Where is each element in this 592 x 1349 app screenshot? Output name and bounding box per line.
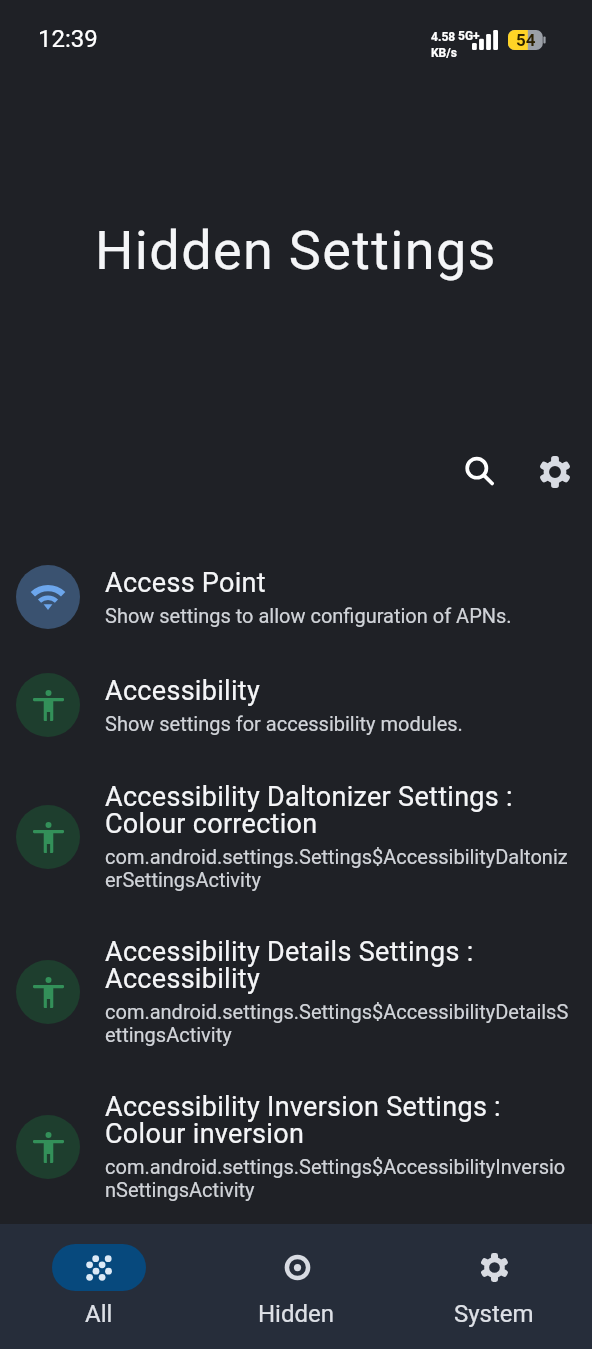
button[interactable]: Accessibility Inversion Settings : Colou… <box>0 1069 592 1224</box>
button[interactable]: Accessibility Details Settings : Accessi… <box>0 914 592 1069</box>
button[interactable]: System <box>395 1224 592 1349</box>
staticText: Accessibility <box>105 675 260 707</box>
button[interactable]: Access Point <box>0 543 592 651</box>
button[interactable]: Search <box>453 445 507 499</box>
button[interactable]: All <box>0 1224 198 1349</box>
staticText: com.android.settings.Settings$Accessibil… <box>105 1001 570 1047</box>
staticText: System <box>454 1300 534 1328</box>
staticText: KB/s <box>431 46 457 60</box>
staticText: 54 <box>516 30 536 49</box>
staticText: 5G+ <box>458 29 480 43</box>
staticText: Accessibility Inversion Settings : Colou… <box>105 1091 570 1150</box>
staticText: Access Point <box>105 567 266 599</box>
staticText: 12:39 <box>38 25 98 53</box>
staticText: com.android.settings.Settings$Accessibil… <box>105 1156 570 1202</box>
staticText: Hidden Settings <box>95 219 497 282</box>
staticText: Accessibility Details Settings : Accessi… <box>105 936 570 995</box>
staticText: Show settings for accessibility modules. <box>105 713 463 736</box>
staticText: Accessibility Daltonizer Settings : Colo… <box>105 781 570 840</box>
staticText: com.android.settings.Settings$Accessibil… <box>105 846 570 892</box>
button[interactable]: Settings <box>528 445 582 499</box>
staticText: Hidden <box>258 1300 335 1328</box>
staticText: Show settings to allow configuration of … <box>105 605 512 628</box>
button[interactable]: Accessibility Daltonizer Settings : Colo… <box>0 759 592 914</box>
staticText: All <box>85 1300 113 1328</box>
staticText: 4.58 <box>431 30 456 44</box>
button[interactable]: Hidden <box>198 1224 395 1349</box>
button[interactable]: Accessibility <box>0 651 592 759</box>
